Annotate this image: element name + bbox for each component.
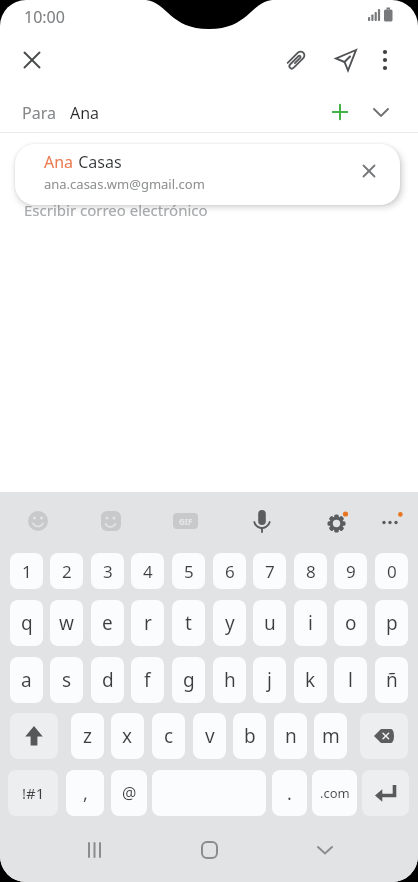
button[interactable]: 8 — [294, 553, 327, 589]
button[interactable]: w — [50, 600, 83, 646]
staticText: ñ — [386, 667, 398, 693]
button[interactable]: 7 — [253, 553, 286, 589]
staticText: r — [144, 610, 152, 636]
button[interactable]: 5 — [172, 553, 205, 589]
staticText: Para — [22, 102, 56, 124]
staticText: d — [102, 667, 114, 693]
button[interactable]: 3 — [91, 553, 124, 589]
button[interactable]: g — [172, 657, 205, 703]
button[interactable]: t — [172, 600, 205, 646]
button[interactable]: f — [131, 657, 164, 703]
button[interactable]: h — [213, 657, 246, 703]
button[interactable]: q — [10, 600, 43, 646]
staticText: GIF — [179, 516, 193, 527]
staticText: , — [83, 781, 88, 806]
button[interactable]: . — [272, 770, 307, 816]
button[interactable]: 4 — [131, 553, 164, 589]
staticText: 2 — [62, 560, 72, 583]
staticText: o — [345, 610, 357, 636]
button[interactable]: y — [213, 600, 246, 646]
staticText: x — [122, 723, 133, 749]
button[interactable] — [184, 826, 234, 874]
button[interactable] — [362, 770, 409, 816]
staticText: k — [305, 667, 316, 693]
staticText: c — [164, 723, 174, 749]
staticText: a — [21, 667, 32, 693]
staticText: 8 — [306, 560, 316, 583]
button[interactable] — [322, 36, 370, 84]
button[interactable] — [349, 151, 389, 191]
button[interactable]: Ana — [15, 144, 400, 205]
staticText: Ana — [44, 151, 74, 173]
button[interactable]: z — [71, 713, 104, 759]
staticText: q — [21, 610, 33, 636]
staticText: .com — [320, 784, 350, 802]
staticText: u — [264, 610, 276, 636]
button[interactable]: 2 — [50, 553, 83, 589]
button[interactable]: v — [193, 713, 226, 759]
button[interactable]: o — [334, 600, 367, 646]
button[interactable] — [360, 713, 408, 759]
staticText: @ — [122, 782, 137, 804]
staticText: 7 — [265, 560, 275, 583]
staticText: t — [185, 610, 192, 636]
staticText: v — [205, 723, 215, 749]
staticText: ana.casas.wm@gmail.com — [44, 175, 205, 193]
staticText: l — [348, 667, 353, 693]
button[interactable]: b — [233, 713, 266, 759]
button[interactable] — [8, 36, 56, 84]
button[interactable]: a — [10, 657, 43, 703]
staticText: 5 — [184, 560, 194, 583]
button[interactable]: 0 — [375, 553, 408, 589]
staticText: f — [144, 667, 151, 693]
staticText: b — [244, 723, 256, 749]
button[interactable] — [70, 826, 120, 874]
staticText: Ana — [70, 102, 100, 124]
button[interactable]: 1 — [10, 553, 43, 589]
staticText: m — [322, 723, 340, 749]
staticText: j — [267, 667, 272, 693]
staticText: 0 — [387, 560, 397, 583]
staticText: Escribir correo electrónico — [24, 200, 208, 220]
button[interactable]: 6 — [213, 553, 246, 589]
staticText: . — [287, 781, 292, 806]
button[interactable]: d — [91, 657, 124, 703]
button[interactable]: s — [50, 657, 83, 703]
button[interactable]: u — [253, 600, 286, 646]
button[interactable]: ñ — [375, 657, 408, 703]
button[interactable]: !#1 — [8, 770, 58, 816]
button[interactable]: n — [274, 713, 307, 759]
staticText: 10:00 — [24, 6, 65, 28]
button[interactable]: @ — [111, 770, 147, 816]
button[interactable]: 9 — [334, 553, 367, 589]
staticText: h — [224, 667, 236, 693]
button[interactable] — [300, 826, 350, 874]
button[interactable]: m — [314, 713, 347, 759]
button[interactable] — [361, 92, 401, 132]
staticText: p — [386, 610, 398, 636]
staticText: Casas — [74, 151, 122, 173]
button[interactable]: .com — [312, 770, 357, 816]
button[interactable]: p — [375, 600, 408, 646]
staticText: i — [308, 610, 313, 636]
button[interactable]: j — [253, 657, 286, 703]
button[interactable]: i — [294, 600, 327, 646]
button[interactable]: , — [66, 770, 104, 816]
button[interactable]: k — [294, 657, 327, 703]
button[interactable]: x — [111, 713, 144, 759]
button[interactable] — [361, 36, 409, 84]
staticText: z — [83, 723, 92, 749]
button[interactable]: l — [334, 657, 367, 703]
button[interactable]: r — [131, 600, 164, 646]
staticText: 3 — [103, 560, 113, 583]
button[interactable] — [272, 36, 320, 84]
button[interactable] — [320, 92, 360, 132]
button[interactable] — [10, 713, 58, 759]
staticText: 1 — [22, 560, 32, 583]
button[interactable]: c — [152, 713, 185, 759]
staticText: y — [225, 610, 235, 636]
staticText: 9 — [346, 560, 356, 583]
staticText: 6 — [225, 560, 235, 583]
button[interactable]: e — [91, 600, 124, 646]
